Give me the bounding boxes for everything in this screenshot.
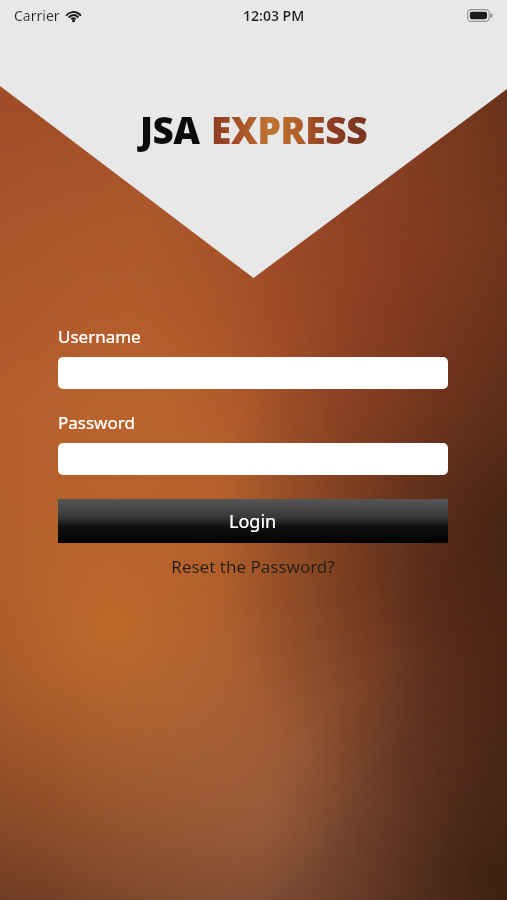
button[interactable]: Login <box>58 499 448 543</box>
staticText: Reset the Password? <box>171 555 335 578</box>
button[interactable]: Reset the Password? <box>58 555 448 578</box>
button[interactable] <box>58 443 448 475</box>
staticText: Login <box>229 509 277 534</box>
staticText: JSA <box>140 104 200 154</box>
staticText: EXPRESS <box>211 104 368 154</box>
staticText: Username <box>58 325 141 348</box>
button[interactable] <box>58 357 448 389</box>
staticText: Password <box>58 411 135 434</box>
staticText: Carrier <box>14 6 60 25</box>
staticText: 12:03 PM <box>243 6 305 25</box>
